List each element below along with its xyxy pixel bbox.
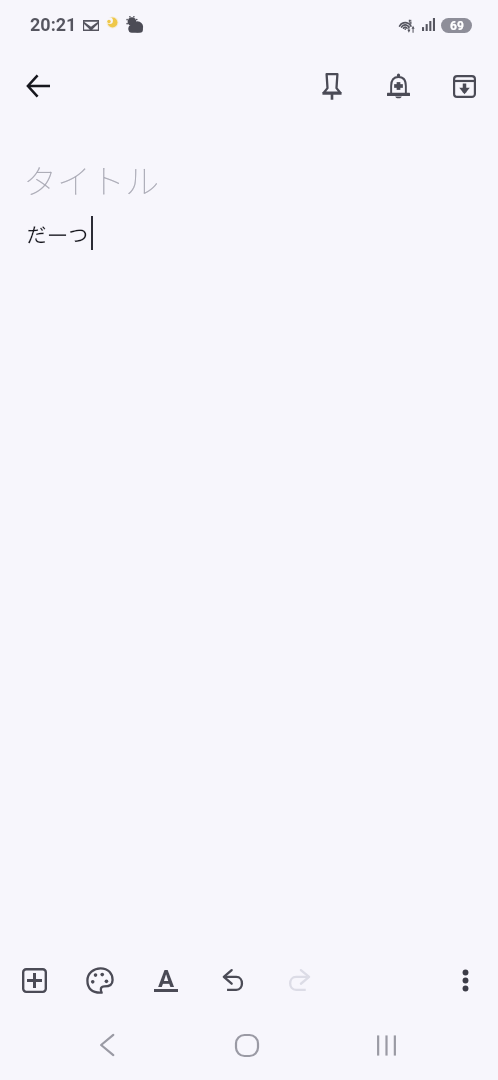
- button[interactable]: Back: [14, 62, 62, 110]
- staticText: 20:21: [30, 14, 77, 35]
- button[interactable]: Add reminder: [374, 62, 422, 110]
- button[interactable]: Add: [10, 956, 58, 1004]
- button[interactable]: Home: [212, 1014, 282, 1076]
- staticText: A: [158, 965, 175, 988]
- staticText: だーつ: [26, 225, 89, 246]
- button[interactable]: だーつ: [0, 206, 498, 936]
- button[interactable]: Back: [72, 1014, 142, 1076]
- button[interactable]: Pin note: [308, 62, 356, 110]
- staticText: タイトル: [23, 155, 159, 204]
- button[interactable]: Archive: [440, 62, 488, 110]
- button[interactable]: Text formatting: [142, 956, 190, 1004]
- button[interactable]: More options: [441, 956, 489, 1004]
- button[interactable]: Undo: [209, 956, 257, 1004]
- staticText: 69: [450, 19, 464, 33]
- button[interactable]: Background colour: [76, 956, 124, 1004]
- button[interactable]: Recent apps: [351, 1014, 421, 1076]
- button[interactable]: タイトル: [0, 150, 498, 206]
- button[interactable]: Redo: [275, 956, 323, 1004]
